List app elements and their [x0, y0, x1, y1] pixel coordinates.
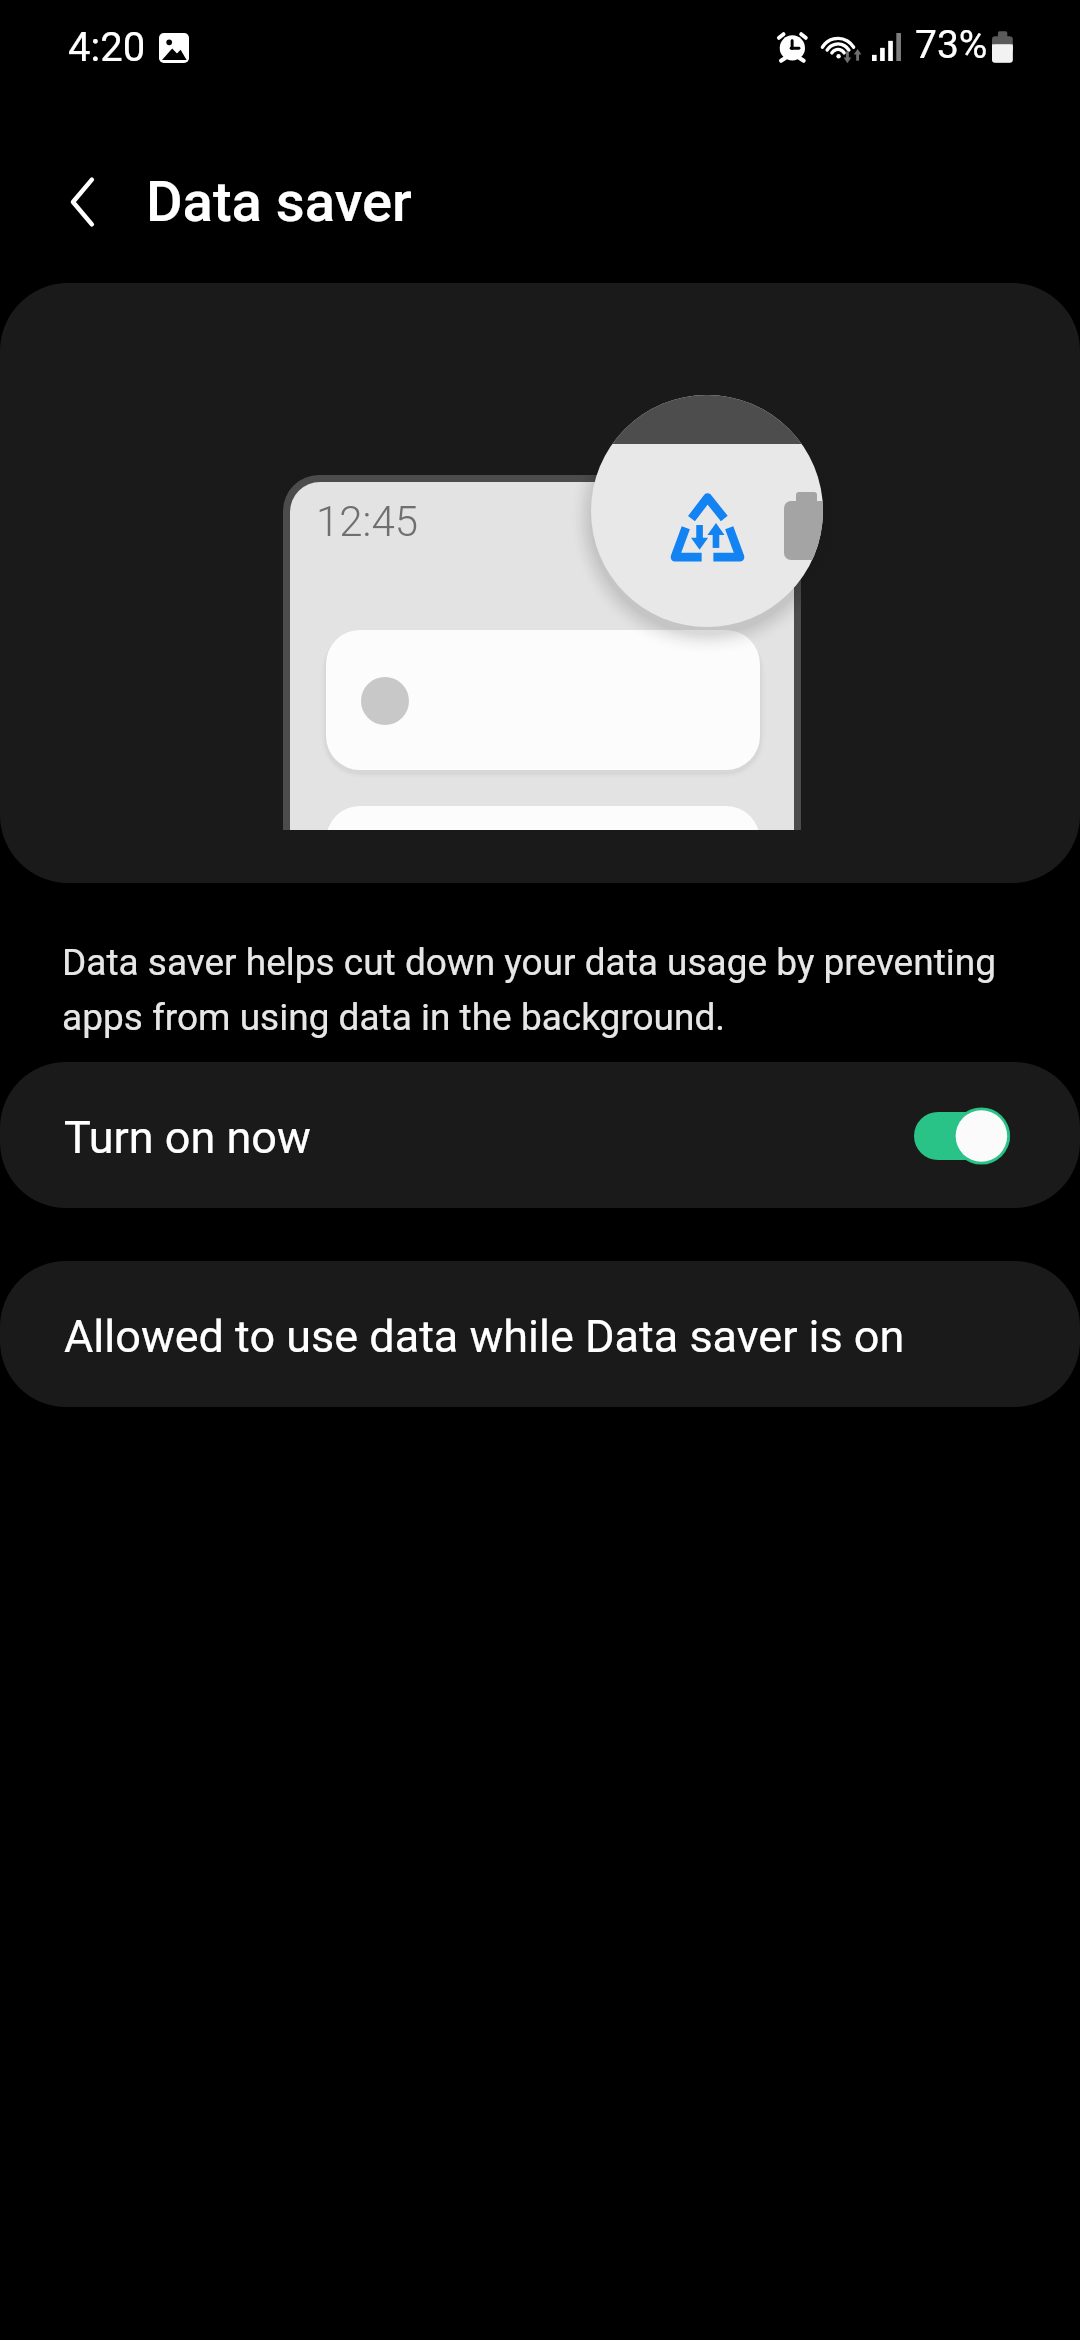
- staticText: Data saver helps cut down your data usag…: [62, 941, 1047, 1039]
- button[interactable]: Turn on Data saver: [914, 1107, 1010, 1165]
- staticText: Allowed to use data while Data saver is …: [64, 1310, 905, 1363]
- staticText: Turn on now: [64, 1111, 311, 1164]
- staticText: 12:45: [316, 497, 419, 546]
- staticText: Data saver: [146, 169, 412, 235]
- button[interactable]: Allowed to use data while Data saver is …: [0, 1261, 1080, 1407]
- staticText: 4:20: [68, 24, 146, 71]
- staticText: 73%: [915, 22, 988, 68]
- button[interactable]: Back: [25, 157, 115, 247]
- button[interactable]: Turn on now: [0, 1062, 1080, 1208]
